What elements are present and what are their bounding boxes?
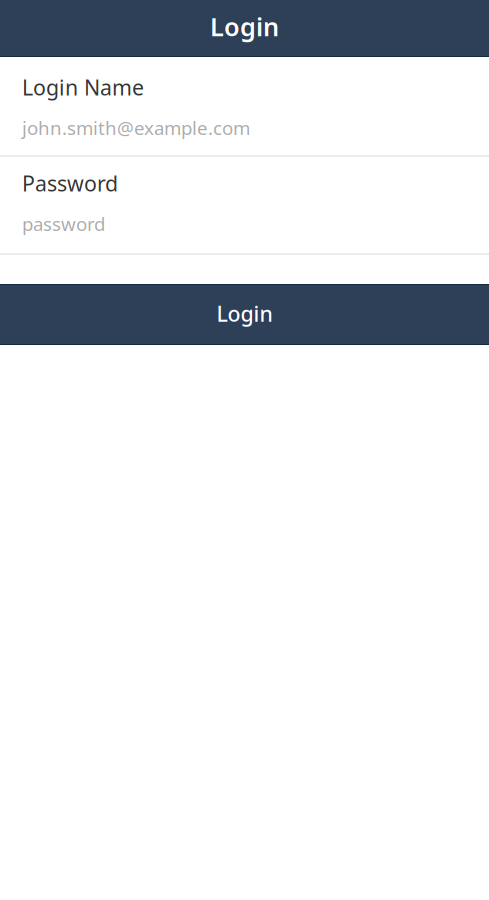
button[interactable]: Login Name <box>0 57 489 157</box>
staticText: john.smith@example.com <box>22 115 250 140</box>
button[interactable]: Login <box>0 284 489 345</box>
staticText: Login <box>210 10 279 43</box>
staticText: Login Name <box>22 73 144 101</box>
button[interactable]: Password <box>0 157 489 255</box>
staticText: Password <box>22 169 118 197</box>
staticText: Login <box>216 299 272 328</box>
staticText: password <box>22 211 105 236</box>
